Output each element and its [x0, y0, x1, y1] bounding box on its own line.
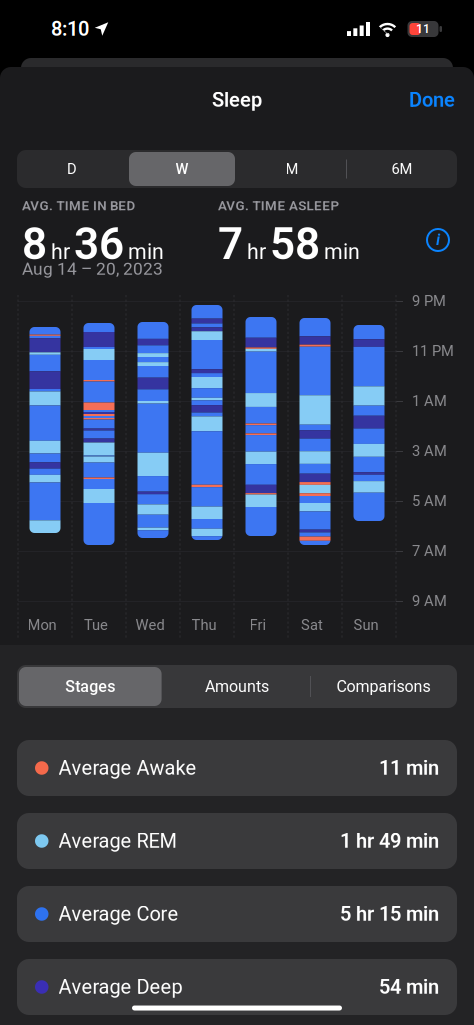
staticText: Average REM: [58, 830, 176, 852]
staticText: 36: [74, 219, 124, 269]
button[interactable]: Average Awake: [17, 740, 457, 796]
staticText: Sun: [353, 617, 378, 633]
staticText: 7: [218, 219, 243, 269]
staticText: Sat: [301, 617, 323, 633]
button[interactable]: Average Deep: [17, 959, 457, 1015]
staticText: 54 min: [379, 976, 439, 998]
staticText: 6M: [391, 161, 412, 177]
staticText: Sleep: [212, 89, 262, 111]
button[interactable]: Comparisons: [310, 665, 457, 708]
staticText: i: [436, 231, 440, 249]
staticText: 9 AM: [412, 593, 447, 609]
staticText: Amounts: [205, 677, 269, 696]
staticText: Wed: [135, 617, 164, 633]
staticText: Comparisons: [336, 677, 430, 696]
staticText: Tue: [84, 617, 108, 633]
staticText: hr: [247, 240, 266, 264]
staticText: M: [285, 161, 298, 177]
button[interactable]: 6M: [347, 150, 457, 188]
staticText: min: [128, 240, 164, 264]
staticText: Fri: [249, 617, 266, 633]
button[interactable]: W: [127, 150, 237, 188]
staticText: min: [324, 240, 360, 264]
staticText: AVG. TIME ASLEEP: [218, 198, 339, 213]
staticText: AVG. TIME IN BED: [22, 198, 135, 213]
staticText: 9 PM: [412, 293, 446, 309]
staticText: Stages: [65, 677, 115, 696]
staticText: 5 hr 15 min: [340, 903, 439, 925]
staticText: 3 AM: [412, 443, 447, 459]
staticText: 11: [416, 22, 430, 36]
staticText: 58: [270, 219, 320, 269]
staticText: 8: [22, 219, 47, 269]
button[interactable]: Done: [409, 89, 455, 111]
button[interactable]: Stages: [17, 665, 164, 708]
staticText: 1 AM: [412, 393, 447, 409]
staticText: 11 min: [379, 757, 439, 779]
staticText: 5 AM: [412, 493, 447, 509]
staticText: Mon: [27, 617, 56, 633]
staticText: 1 hr 49 min: [340, 830, 439, 852]
staticText: 7 AM: [412, 543, 447, 559]
button[interactable]: Average Core: [17, 886, 457, 942]
staticText: Average Core: [58, 903, 178, 925]
staticText: 11 PM: [412, 343, 454, 359]
staticText: Done: [409, 89, 455, 111]
staticText: Aug 14 – 20, 2023: [22, 259, 163, 279]
button[interactable]: Average REM: [17, 813, 457, 869]
staticText: Thu: [191, 617, 216, 633]
button[interactable]: Amounts: [164, 665, 310, 708]
staticText: Average Deep: [58, 976, 182, 998]
button[interactable]: About Sleep: [426, 228, 450, 252]
staticText: 8:10: [51, 18, 89, 40]
staticText: D: [67, 161, 77, 177]
button[interactable]: M: [237, 150, 347, 188]
button[interactable]: D: [17, 150, 127, 188]
staticText: W: [175, 161, 188, 177]
staticText: Average Awake: [58, 757, 196, 779]
staticText: hr: [51, 240, 70, 264]
